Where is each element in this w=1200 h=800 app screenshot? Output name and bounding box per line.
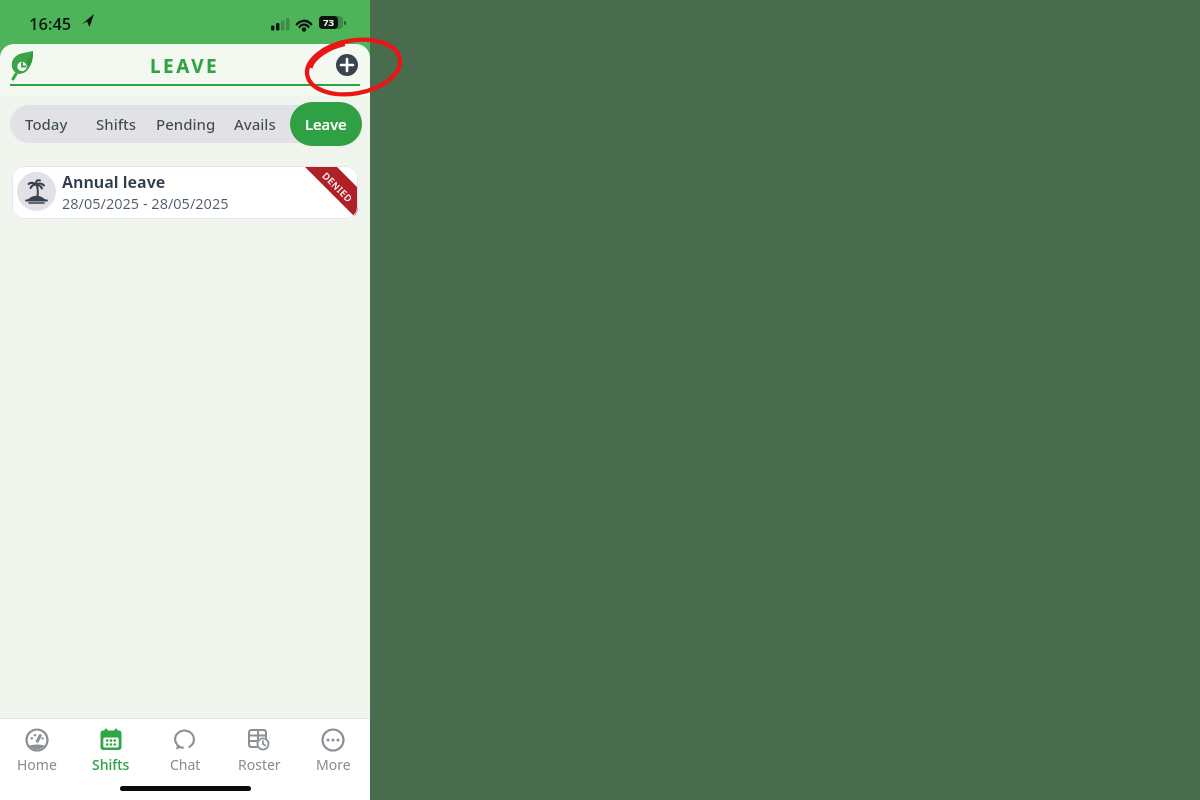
staticText: 28/05/2025 - 28/05/2025 xyxy=(62,193,229,213)
staticText: Leave xyxy=(305,114,347,134)
staticText: DENIED xyxy=(320,169,356,205)
staticText: Avails xyxy=(234,114,276,134)
staticText: Today xyxy=(25,114,68,134)
button[interactable] xyxy=(336,54,358,76)
staticText: Chat xyxy=(170,755,201,774)
button[interactable]: Leave xyxy=(290,102,362,146)
staticText: Shifts xyxy=(96,114,137,134)
button[interactable]: Avails xyxy=(220,105,290,143)
button[interactable]: Annual leave xyxy=(12,166,358,219)
staticText: Pending xyxy=(156,114,216,134)
button[interactable]: More xyxy=(296,728,370,774)
button[interactable]: Chat xyxy=(148,728,222,774)
staticText: 16:45 xyxy=(29,12,72,34)
button[interactable]: Home xyxy=(0,728,74,774)
staticText: 73 xyxy=(323,16,334,29)
button[interactable]: Today xyxy=(10,105,82,143)
staticText: LEAVE xyxy=(150,53,220,79)
staticText: Roster xyxy=(238,755,281,774)
button[interactable]: Shifts xyxy=(82,105,151,143)
button[interactable]: Pending xyxy=(151,105,220,143)
button[interactable]: Roster xyxy=(222,728,296,774)
staticText: Annual leave xyxy=(62,171,166,193)
button[interactable]: Shifts xyxy=(74,728,148,774)
staticText: More xyxy=(316,755,351,774)
staticText: Shifts xyxy=(92,755,130,774)
staticText: Home xyxy=(17,755,57,774)
